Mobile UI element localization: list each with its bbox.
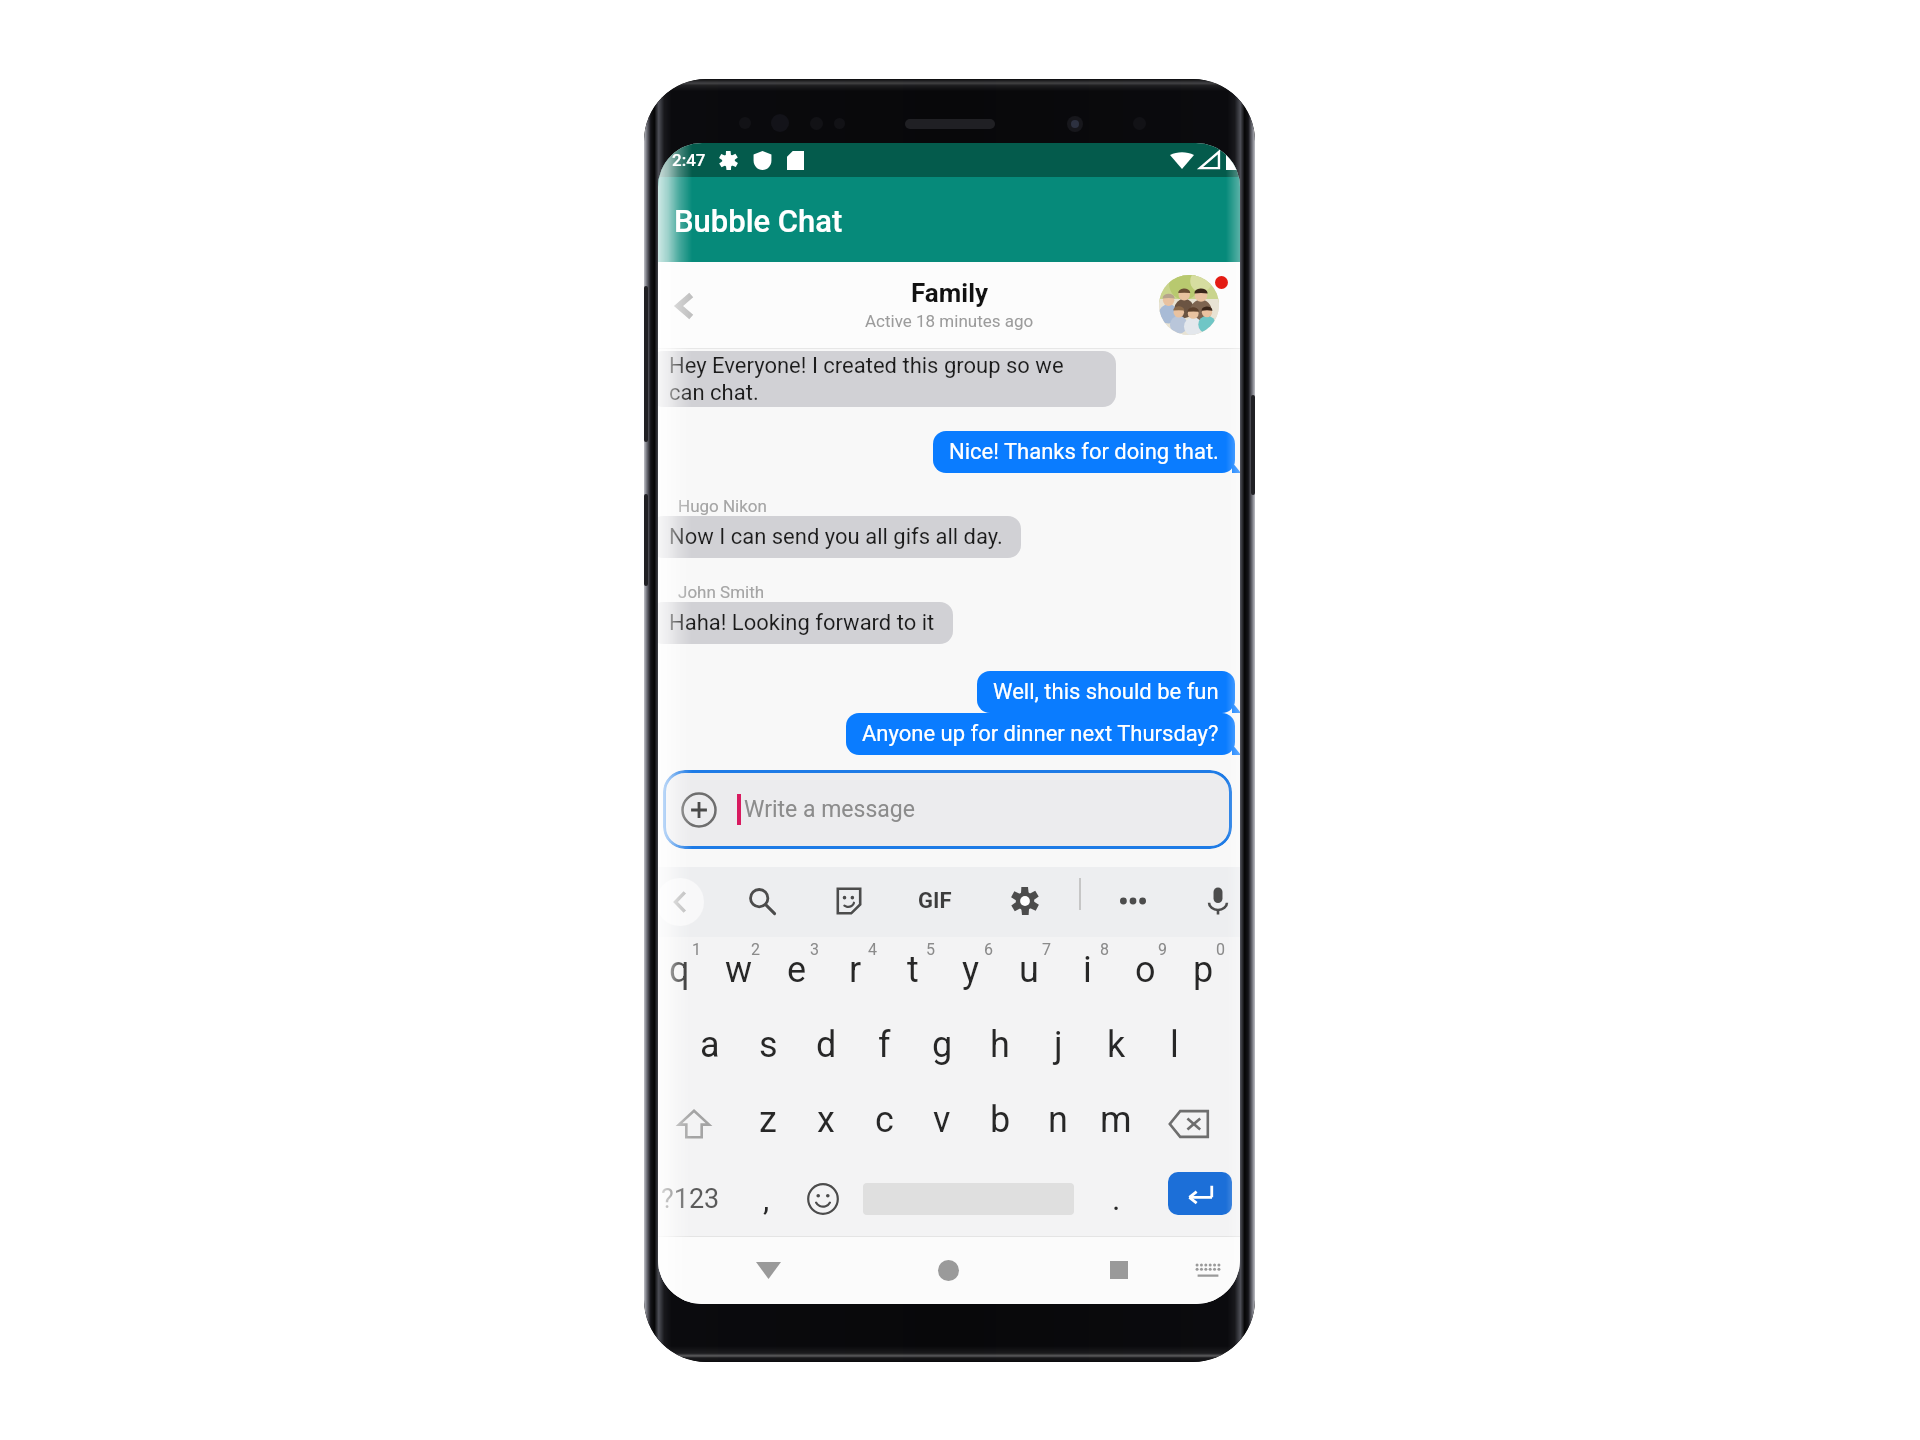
staticText: ,	[763, 1180, 770, 1218]
button[interactable]: Home	[925, 1247, 971, 1293]
button[interactable]: h	[971, 1011, 1029, 1086]
staticText: g	[932, 1024, 953, 1066]
staticText: d	[816, 1024, 837, 1066]
staticText: u	[1019, 949, 1039, 991]
staticText: y	[962, 949, 980, 991]
button[interactable]: Now I can send you all gifs all day.	[658, 516, 1021, 558]
button[interactable]: Group profile	[1159, 275, 1219, 335]
button[interactable]: Search	[739, 878, 785, 924]
button[interactable]: g	[913, 1011, 971, 1086]
staticText: i	[1083, 949, 1092, 991]
button[interactable]: Haha! Looking forward to it	[658, 602, 953, 644]
staticText: t	[907, 949, 919, 991]
button[interactable]: Well, this should be fun	[977, 671, 1235, 713]
staticText: 7	[1042, 940, 1051, 959]
button[interactable]: f	[855, 1011, 913, 1086]
staticText: v	[933, 1099, 951, 1141]
button[interactable]: Voice input	[1195, 878, 1240, 924]
button[interactable]: .	[1094, 1161, 1138, 1236]
button[interactable]: Keyboard	[1188, 1250, 1228, 1290]
staticText: Well, this should be fun	[993, 679, 1219, 705]
staticText: Active 18 minutes ago	[865, 311, 1034, 331]
button[interactable]: Shift	[658, 1086, 738, 1161]
button[interactable]: s	[739, 1011, 797, 1086]
button[interactable]: d	[797, 1011, 855, 1086]
button[interactable]: More options	[1110, 878, 1156, 924]
staticText: 9	[1158, 940, 1167, 959]
staticText: 2	[751, 940, 760, 959]
staticText: Haha! Looking forward to it	[669, 610, 935, 636]
button[interactable]: 6	[942, 937, 1000, 1011]
button[interactable]: ?123	[658, 1161, 726, 1236]
button[interactable]: z	[738, 1086, 797, 1161]
button[interactable]: 2	[709, 937, 768, 1011]
button[interactable]: Nice! Thanks for doing that.	[933, 431, 1235, 473]
button[interactable]: Collapse keyboard	[658, 878, 704, 926]
button[interactable]: Write a message	[663, 770, 1232, 849]
staticText: m	[1100, 1099, 1132, 1141]
staticText: x	[817, 1099, 835, 1141]
button[interactable]: a	[680, 1011, 739, 1086]
staticText: 5	[926, 940, 935, 959]
button[interactable]: Emoji	[801, 1161, 845, 1236]
button[interactable]: Hey Everyone! I created this group so we…	[658, 351, 1116, 407]
button[interactable]: ,	[744, 1161, 788, 1236]
button[interactable]: GIF	[912, 878, 958, 924]
button[interactable]: 9	[1116, 937, 1174, 1011]
button[interactable]: x	[797, 1086, 855, 1161]
button[interactable]: k	[1087, 1011, 1145, 1086]
button[interactable]: c	[855, 1086, 913, 1161]
staticText: f	[878, 1024, 891, 1066]
staticText: 0	[1216, 940, 1225, 959]
staticText: s	[759, 1024, 778, 1066]
button[interactable]: Stickers	[826, 878, 872, 924]
staticText: Nice! Thanks for doing that.	[949, 439, 1219, 465]
staticText: j	[1054, 1024, 1063, 1066]
staticText: n	[1048, 1099, 1068, 1141]
button[interactable]: Back	[660, 282, 708, 330]
button[interactable]: n	[1029, 1086, 1087, 1161]
staticText: w	[725, 949, 753, 991]
staticText: 4	[868, 940, 877, 959]
staticText: o	[1135, 949, 1156, 991]
button[interactable]: Settings	[1002, 878, 1048, 924]
staticText: 2:47	[672, 150, 706, 170]
staticText: Write a message	[744, 796, 915, 823]
staticText: Now I can send you all gifs all day.	[669, 524, 1003, 550]
staticText: z	[759, 1099, 777, 1141]
staticText: r	[849, 949, 862, 991]
staticText: GIF	[918, 888, 952, 914]
button[interactable]: v	[913, 1086, 971, 1161]
staticText: ?123	[661, 1183, 720, 1215]
staticText: Family	[911, 278, 989, 308]
button[interactable]: l	[1145, 1011, 1203, 1086]
staticText: John Smith	[678, 582, 765, 602]
button[interactable]: b	[971, 1086, 1029, 1161]
button[interactable]: 7	[1000, 937, 1058, 1011]
button[interactable]: 5	[884, 937, 942, 1011]
button[interactable]: Back	[745, 1247, 791, 1293]
button[interactable]: Space	[863, 1161, 1074, 1236]
button[interactable]: Recents	[1096, 1247, 1142, 1293]
button[interactable]: 3	[768, 937, 826, 1011]
staticText: h	[990, 1024, 1010, 1066]
staticText: Hugo Nikon	[678, 496, 767, 516]
button[interactable]: 0	[1174, 937, 1232, 1011]
staticText: q	[669, 949, 690, 991]
staticText: b	[990, 1099, 1011, 1141]
staticText: 1	[692, 940, 701, 959]
staticText: 6	[984, 940, 993, 959]
button[interactable]: Enter	[1168, 1172, 1232, 1215]
button[interactable]: 8	[1058, 937, 1116, 1011]
button[interactable]: Anyone up for dinner next Thursday?	[846, 713, 1235, 755]
button[interactable]: Backspace	[1145, 1086, 1232, 1161]
staticText: Bubble Chat	[674, 203, 843, 239]
button[interactable]: 4	[826, 937, 884, 1011]
button[interactable]: j	[1029, 1011, 1087, 1086]
button[interactable]: 1	[658, 937, 709, 1011]
staticText: c	[875, 1099, 894, 1141]
staticText: e	[787, 949, 807, 991]
staticText: 8	[1100, 940, 1109, 959]
button[interactable]: m	[1087, 1086, 1145, 1161]
staticText: a	[700, 1024, 720, 1066]
